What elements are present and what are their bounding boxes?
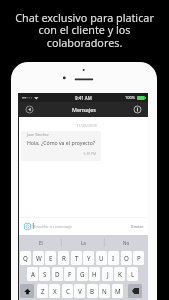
button[interactable]: N [99,284,110,298]
staticText: 9:41 AM [75,95,92,101]
button[interactable]: X [49,284,60,298]
button[interactable]: Backspace [128,284,142,298]
staticText: E [49,254,53,262]
button[interactable]: Q [20,251,31,265]
button[interactable]: C [62,284,73,298]
staticText: D [55,270,60,278]
staticText: J [107,270,109,278]
button[interactable]: Contact info [133,105,142,114]
staticText: U [99,254,104,262]
button[interactable]: W [33,251,44,265]
button[interactable]: L [127,267,138,281]
staticText: F [68,270,72,278]
staticText: T [75,254,79,262]
staticText: I [112,254,115,262]
button[interactable]: Juan Sánchez [21,131,101,161]
staticText: Chat exclusivo para platicar con el clie… [0,10,169,50]
button[interactable]: El [19,235,62,250]
button[interactable]: A [27,267,38,281]
staticText: W [36,254,42,262]
staticText: Hola, ¿Cómo va el proyecto? [27,139,96,146]
staticText: M [115,287,121,295]
button[interactable]: M [112,284,123,298]
staticText: X [53,287,57,295]
button[interactable]: P [133,251,144,265]
button[interactable]: Enviar [128,220,147,232]
staticText: A [31,270,35,278]
button[interactable]: Back [25,105,34,114]
button[interactable]: H [89,267,100,281]
staticText: Y [87,254,91,262]
staticText: C [66,287,70,295]
staticText: P [137,254,141,262]
button[interactable]: J [102,267,113,281]
button[interactable]: Z [37,284,48,298]
button[interactable]: La [62,235,105,250]
staticText: B [90,287,95,295]
staticText: La [81,240,86,246]
button[interactable]: U [96,251,107,265]
button[interactable]: Add attachment [24,223,31,230]
staticText: Enviar [131,223,144,229]
button[interactable]: B [87,284,98,298]
staticText: Juan Sánchez [27,132,49,137]
staticText: K [118,270,122,278]
staticText: Z [41,287,45,295]
staticText: 5:39 PM [21,151,96,155]
button[interactable]: F [64,267,75,281]
button[interactable]: R [58,251,69,265]
staticText: O [124,254,129,262]
staticText: R [62,254,66,262]
button[interactable]: S [39,267,50,281]
staticText: H [92,270,97,278]
button[interactable]: D [52,267,63,281]
button[interactable]: K [114,267,125,281]
staticText: S [43,270,47,278]
button[interactable]: V [74,284,85,298]
button[interactable]: Y [83,251,94,265]
button[interactable]: Shift [20,284,34,298]
staticText: 100% [125,95,136,100]
button[interactable]: I [108,251,119,265]
button[interactable]: E [45,251,56,265]
staticText: L [131,270,135,278]
button[interactable]: G [77,267,88,281]
staticText: No [123,240,130,246]
staticText: Mensajes [72,106,96,113]
staticText: G [80,270,85,278]
staticText: V [78,287,82,295]
staticText: El [39,240,43,246]
staticText: Q [23,254,28,262]
button[interactable]: O [121,251,132,265]
staticText: 11/26/2018 [22,123,151,128]
button[interactable]: T [71,251,82,265]
button[interactable]: No [105,235,148,250]
staticText: N [102,287,107,295]
staticText: Escribe tu mensaje [34,223,72,229]
